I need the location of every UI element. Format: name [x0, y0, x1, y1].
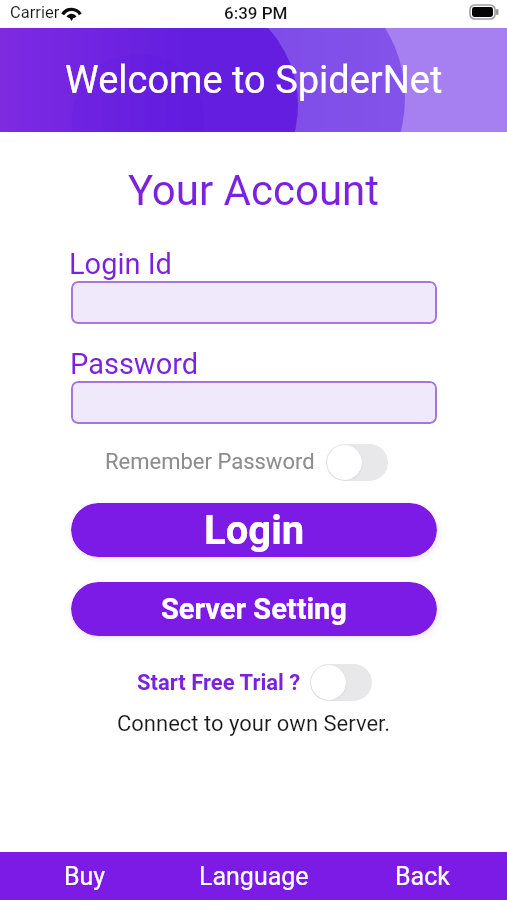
button[interactable]: Back — [338, 852, 507, 900]
staticText: Back — [395, 862, 450, 891]
staticText: Start Free Trial ? — [137, 670, 301, 696]
staticText: Buy — [64, 862, 106, 891]
other: Wifi signal — [61, 5, 82, 21]
button[interactable]: Text input — [71, 381, 437, 424]
button[interactable]: Server Setting — [71, 582, 437, 636]
staticText: Language — [199, 862, 309, 891]
button[interactable]: Toggle switch — [310, 664, 372, 701]
button[interactable]: Login — [71, 503, 437, 557]
staticText: Password — [70, 347, 199, 381]
staticText: Server Setting — [161, 592, 347, 626]
button[interactable]: Buy — [0, 852, 169, 900]
staticText: Connect to your own Server. — [0, 711, 507, 737]
button[interactable]: Language — [169, 852, 338, 900]
staticText: Your Account — [0, 166, 507, 215]
button[interactable]: Text input — [71, 281, 437, 324]
staticText: Carrier — [10, 3, 60, 22]
button[interactable]: Toggle switch — [326, 444, 388, 481]
staticText: Login Id — [69, 247, 172, 281]
staticText: Login — [204, 507, 305, 554]
staticText: Welcome to SpiderNet — [65, 58, 443, 103]
other: Battery — [470, 5, 502, 20]
staticText: Remember Password — [105, 449, 315, 475]
staticText: 6:39 PM — [224, 3, 288, 23]
